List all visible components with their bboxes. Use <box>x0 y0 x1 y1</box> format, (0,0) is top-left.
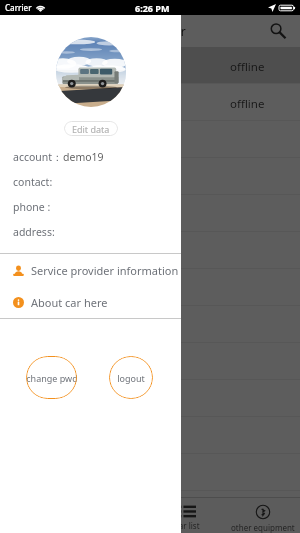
button[interactable]: car ${i + 1} <box>0 47 300 84</box>
button[interactable] <box>0 343 300 380</box>
staticText: Carrier <box>5 2 32 13</box>
staticText: About car here <box>31 295 108 310</box>
staticText: other equipment <box>231 522 295 533</box>
staticText: phone : <box>13 200 51 214</box>
staticText: 6:26 PM <box>135 2 170 14</box>
button[interactable]: other equipment <box>225 498 300 533</box>
staticText: offline <box>230 96 265 112</box>
staticText: account： <box>13 150 63 164</box>
staticText: car ${i + 1} <box>12 95 67 110</box>
button[interactable] <box>0 306 300 343</box>
staticText: offline <box>230 59 265 75</box>
staticText: car list <box>175 520 200 531</box>
staticText: car manager <box>114 23 186 39</box>
staticText: contact: <box>13 175 53 189</box>
button[interactable]: logout <box>109 356 153 399</box>
button[interactable]: Avatar <box>56 37 126 107</box>
button[interactable]: Edit data <box>64 121 118 136</box>
button[interactable]: change pwd <box>26 356 77 399</box>
button[interactable]: car list <box>150 498 225 533</box>
staticText: logout <box>117 372 145 384</box>
staticText: address: <box>13 225 55 239</box>
button[interactable]: About car here <box>0 286 181 318</box>
button[interactable] <box>0 195 300 232</box>
staticText: Edit data <box>72 123 110 135</box>
staticText: car ${i + 1} <box>12 58 67 73</box>
button[interactable] <box>0 380 300 417</box>
button[interactable] <box>0 158 300 195</box>
button[interactable] <box>0 454 300 491</box>
button[interactable] <box>0 417 300 454</box>
button[interactable]: car ${i + 1} <box>0 84 300 121</box>
button[interactable] <box>0 232 300 269</box>
staticText: demo19 <box>63 150 104 164</box>
button[interactable]: Search <box>268 15 287 47</box>
button[interactable]: Service provider information <box>0 254 181 286</box>
button[interactable] <box>0 269 300 306</box>
button[interactable] <box>0 121 300 158</box>
staticText: change pwd <box>26 372 77 384</box>
staticText: Service provider information <box>31 263 179 278</box>
